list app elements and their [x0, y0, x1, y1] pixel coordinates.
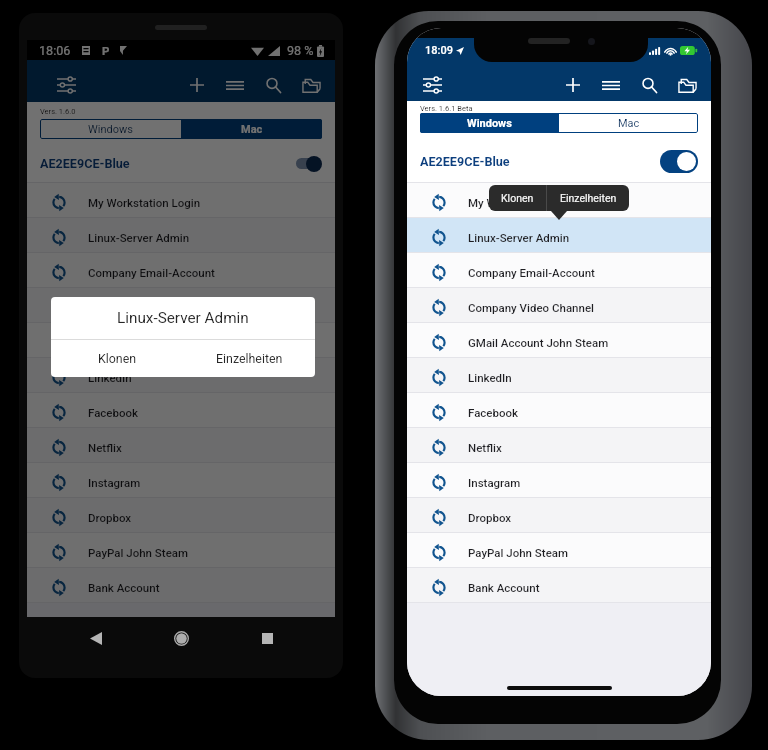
staticText: Netflix [468, 441, 502, 454]
staticText: GMail Account John Steam [468, 336, 609, 349]
staticText: Vers. 1.6.1 Beta [420, 104, 473, 113]
staticText: Dropbox [88, 511, 132, 524]
staticText: Linux-Server Admin [117, 309, 249, 327]
button[interactable]: Mac [181, 119, 322, 139]
staticText: LinkedIn [88, 371, 132, 384]
button[interactable]: Bank Account [407, 568, 711, 603]
button[interactable]: My Workstation Login [27, 183, 335, 218]
button[interactable]: Facebook [407, 393, 711, 428]
button[interactable]: Filter settings [51, 70, 81, 100]
button[interactable]: Folder [674, 72, 700, 98]
staticText: PayPal John Steam [468, 546, 569, 559]
button[interactable]: Toggle enabled [296, 155, 322, 172]
staticText: Facebook [468, 406, 519, 419]
button[interactable]: Search [636, 72, 662, 98]
button[interactable]: Einzelheiten [183, 340, 315, 377]
button[interactable]: GMail Account John Steam [407, 323, 711, 358]
staticText: My Workstation Login [88, 196, 201, 209]
button[interactable]: Einzelheiten [547, 185, 629, 211]
staticText: Bank Account [468, 581, 540, 594]
button[interactable]: Search [260, 72, 286, 98]
button[interactable]: Toggle enabled [660, 150, 698, 173]
button[interactable]: Add [560, 72, 586, 98]
staticText: 18:09 [425, 44, 453, 57]
staticText: AE2EE9CE-Blue [420, 154, 510, 169]
button[interactable]: Home [164, 621, 198, 655]
staticText: Company Video Channel [88, 301, 214, 314]
staticText: Instagram [468, 476, 521, 489]
staticText: PayPal John Steam [88, 546, 189, 559]
staticText: Mac [241, 123, 263, 136]
staticText: Instagram [88, 476, 141, 489]
staticText: Einzelheiten [216, 351, 283, 366]
button[interactable]: Back [79, 621, 113, 655]
button[interactable]: Company Email-Account [407, 253, 711, 288]
button[interactable]: Facebook [27, 393, 335, 428]
button[interactable]: Filter settings [417, 70, 447, 100]
button[interactable]: Menu [222, 72, 248, 98]
staticText: Einzelheiten [560, 192, 617, 204]
staticText: Klonen [98, 351, 137, 366]
button[interactable]: Netflix [27, 428, 335, 463]
button[interactable]: Dropbox [407, 498, 711, 533]
staticText: Company Email-Account [468, 266, 595, 279]
staticText: Klonen [501, 192, 534, 204]
staticText: Company Email-Account [88, 266, 215, 279]
staticText: 98 % [287, 43, 314, 58]
button[interactable]: PayPal John Steam [407, 533, 711, 568]
staticText: Windows [467, 117, 512, 130]
button[interactable]: Linux-Server Admin [407, 218, 711, 253]
button[interactable]: Linux-Server Admin [27, 218, 335, 253]
button[interactable]: Instagram [407, 463, 711, 498]
staticText: Company Video Channel [468, 301, 594, 314]
staticText: LinkedIn [468, 371, 512, 384]
button[interactable]: LinkedIn [27, 358, 335, 393]
staticText: Facebook [88, 406, 139, 419]
button[interactable]: Klonen [489, 185, 546, 211]
button[interactable]: PayPal John Steam [27, 533, 335, 568]
button[interactable]: Mac [559, 113, 698, 133]
staticText: Bank Account [88, 581, 160, 594]
staticText: Linux-Server Admin [468, 231, 570, 244]
button[interactable]: LinkedIn [407, 358, 711, 393]
button[interactable]: Folder [298, 72, 324, 98]
staticText: P [102, 44, 110, 57]
button[interactable]: GMail Account John Steam [27, 323, 335, 358]
staticText: Windows [88, 123, 133, 136]
button[interactable]: Bank Account [27, 568, 335, 603]
button[interactable]: Klonen [51, 340, 183, 377]
button[interactable]: Company Email-Account [27, 253, 335, 288]
staticText: My Workstation Login [468, 196, 581, 209]
staticText: Netflix [88, 441, 122, 454]
button[interactable]: Instagram [27, 463, 335, 498]
button[interactable]: Netflix [407, 428, 711, 463]
button[interactable]: Add [184, 72, 210, 98]
button[interactable]: My Workstation Login [407, 183, 711, 218]
button[interactable]: Windows [420, 113, 559, 133]
staticText: AE2EE9CE-Blue [40, 156, 130, 171]
button[interactable]: Company Video Channel [407, 288, 711, 323]
button[interactable]: Company Video Channel [27, 288, 335, 323]
staticText: 18:06 [39, 43, 71, 58]
staticText: Linux-Server Admin [88, 231, 190, 244]
button[interactable]: Menu [598, 72, 624, 98]
button[interactable]: Windows [40, 119, 181, 139]
button[interactable]: Dropbox [27, 498, 335, 533]
staticText: Mac [618, 117, 640, 130]
staticText: Dropbox [468, 511, 512, 524]
staticText: Vers. 1.6.0 [40, 107, 76, 116]
button[interactable]: Recents [250, 621, 284, 655]
staticText: GMail Account John Steam [88, 336, 229, 349]
